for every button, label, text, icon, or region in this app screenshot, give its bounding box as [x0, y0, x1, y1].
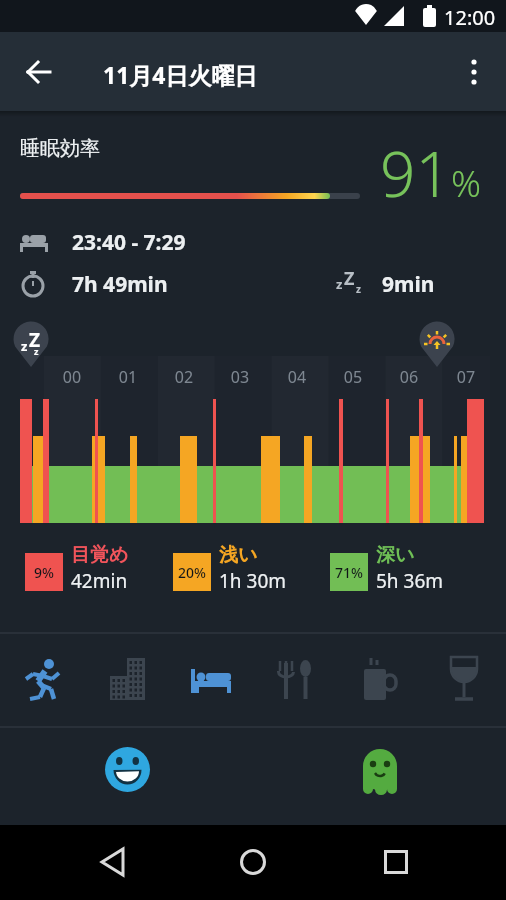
staticText: 05 [338, 366, 368, 388]
staticText: 浅い [219, 543, 258, 567]
button[interactable] [0, 634, 84, 724]
staticText: 00 [57, 366, 87, 388]
staticText: 目覚め [71, 543, 129, 567]
button[interactable] [64, 729, 190, 809]
staticText: Z [29, 327, 41, 353]
staticText: z [356, 282, 361, 296]
button[interactable] [368, 834, 424, 890]
staticText: 7h 49min [72, 270, 168, 299]
staticText: 07 [451, 366, 481, 388]
button[interactable] [225, 834, 281, 890]
staticText: Z [344, 266, 355, 291]
staticText: 9% [34, 563, 54, 582]
staticText: 42min [71, 568, 128, 594]
button[interactable] [338, 634, 422, 724]
staticText: 01 [113, 366, 143, 388]
staticText: 深い [376, 543, 415, 567]
staticText: 02 [169, 366, 199, 388]
staticText: 5h 36m [376, 568, 444, 594]
button[interactable] [169, 634, 253, 724]
button[interactable] [11, 32, 67, 111]
button[interactable] [85, 634, 169, 724]
staticText: 11月4日火曜日 [103, 59, 258, 90]
staticText: 04 [282, 366, 312, 388]
button[interactable] [422, 634, 506, 724]
staticText: 71% [335, 563, 363, 582]
staticText: z [336, 275, 343, 293]
staticText: z [21, 337, 28, 355]
staticText: 20% [178, 563, 206, 582]
staticText: 1h 30m [219, 568, 287, 594]
staticText: z [34, 345, 39, 357]
button[interactable] [452, 32, 496, 111]
button[interactable] [317, 732, 443, 812]
staticText: 睡眠効率 [20, 136, 100, 161]
staticText: 9min [382, 270, 435, 299]
staticText: 91 [380, 131, 451, 215]
staticText: 12:00 [444, 4, 496, 31]
button[interactable] [85, 834, 141, 890]
staticText: % [451, 157, 482, 207]
button[interactable] [253, 634, 337, 724]
staticText: 03 [225, 366, 255, 388]
staticText: 23:40 - 7:29 [72, 228, 186, 257]
staticText: 06 [394, 366, 424, 388]
